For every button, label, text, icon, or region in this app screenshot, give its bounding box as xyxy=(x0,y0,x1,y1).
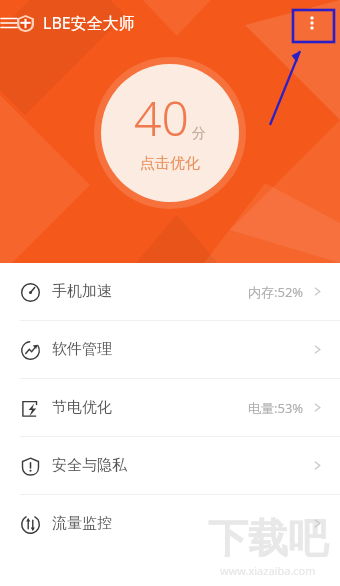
staticText: 内存:52% xyxy=(248,283,304,301)
button[interactable]: 安全与隐私 xyxy=(0,437,340,494)
staticText: www.xiazaiba.com xyxy=(220,563,316,578)
staticText: 分 xyxy=(192,125,206,143)
staticText: 40 xyxy=(134,85,189,150)
staticText: 下载吧 xyxy=(208,513,328,563)
staticText: 电量:53% xyxy=(248,399,304,417)
staticText: 流量监控 xyxy=(52,514,112,533)
staticText: 节电优化 xyxy=(52,398,112,417)
button[interactable]: 节电优化 xyxy=(0,379,340,436)
button[interactable]: 手机加速 xyxy=(0,263,340,320)
button[interactable]: 40 xyxy=(94,57,246,209)
button[interactable]: 软件管理 xyxy=(0,321,340,378)
staticText: 安全与隐私 xyxy=(52,456,127,475)
button[interactable]: 流量监控 xyxy=(0,495,340,552)
staticText: LBE安全大师 xyxy=(43,12,135,34)
button[interactable]: Menu xyxy=(0,6,26,40)
button[interactable]: More options xyxy=(294,5,330,41)
staticText: 软件管理 xyxy=(52,340,112,359)
staticText: 点击优化 xyxy=(140,154,200,173)
staticText: 手机加速 xyxy=(52,282,112,301)
